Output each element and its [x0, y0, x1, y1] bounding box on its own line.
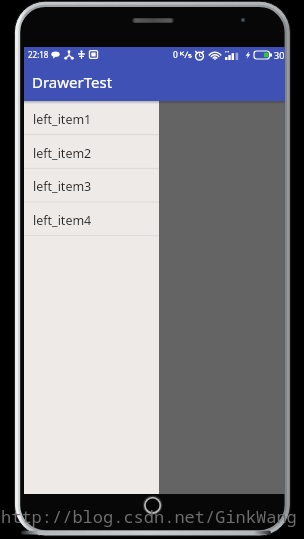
staticText: left_item2: [33, 145, 92, 162]
other: Wi-Fi: [209, 51, 221, 60]
staticText: 30: [274, 49, 285, 61]
button[interactable]: DrawerTest: [24, 62, 285, 101]
staticText: http://blog.csdn.net/GinkWang: [1, 505, 297, 528]
other: Messages: [51, 50, 60, 59]
other: Notification: [89, 50, 98, 59]
staticText: left_item1: [33, 111, 92, 128]
button[interactable]: left_item4: [24, 202, 159, 236]
other: Signal: [225, 51, 241, 60]
other: Accessibility: [78, 50, 85, 59]
staticText: DrawerTest: [32, 72, 113, 92]
button[interactable]: left_item3: [24, 168, 159, 202]
button[interactable]: left_item1: [24, 101, 159, 135]
staticText: left_item4: [33, 212, 92, 229]
other: Alarm: [194, 50, 205, 61]
button[interactable]: left_item2: [24, 135, 159, 169]
other: Charging: [245, 51, 251, 59]
staticText: 0: [173, 49, 178, 61]
staticText: 22:18: [28, 49, 49, 60]
staticText: left_item3: [33, 178, 92, 195]
other: Battery: [254, 51, 272, 59]
other: Share: [64, 50, 74, 60]
